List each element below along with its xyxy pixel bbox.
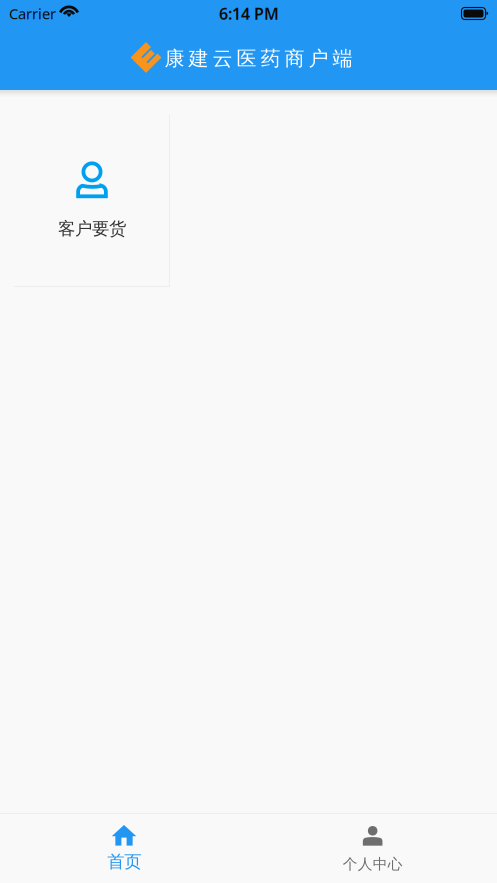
staticText: 个人中心 (343, 855, 403, 873)
staticText: Carrier (9, 4, 56, 23)
staticText: 首页 (107, 851, 141, 872)
button[interactable]: 个人中心 (248, 814, 497, 883)
button[interactable]: 首页 (0, 814, 248, 883)
staticText: 康 建 云 医 药 商 户 端 (164, 46, 352, 71)
staticText: 客户要货 (58, 218, 126, 239)
button[interactable]: 客户要货 (0, 115, 170, 287)
staticText: 6:14 PM (219, 3, 279, 24)
